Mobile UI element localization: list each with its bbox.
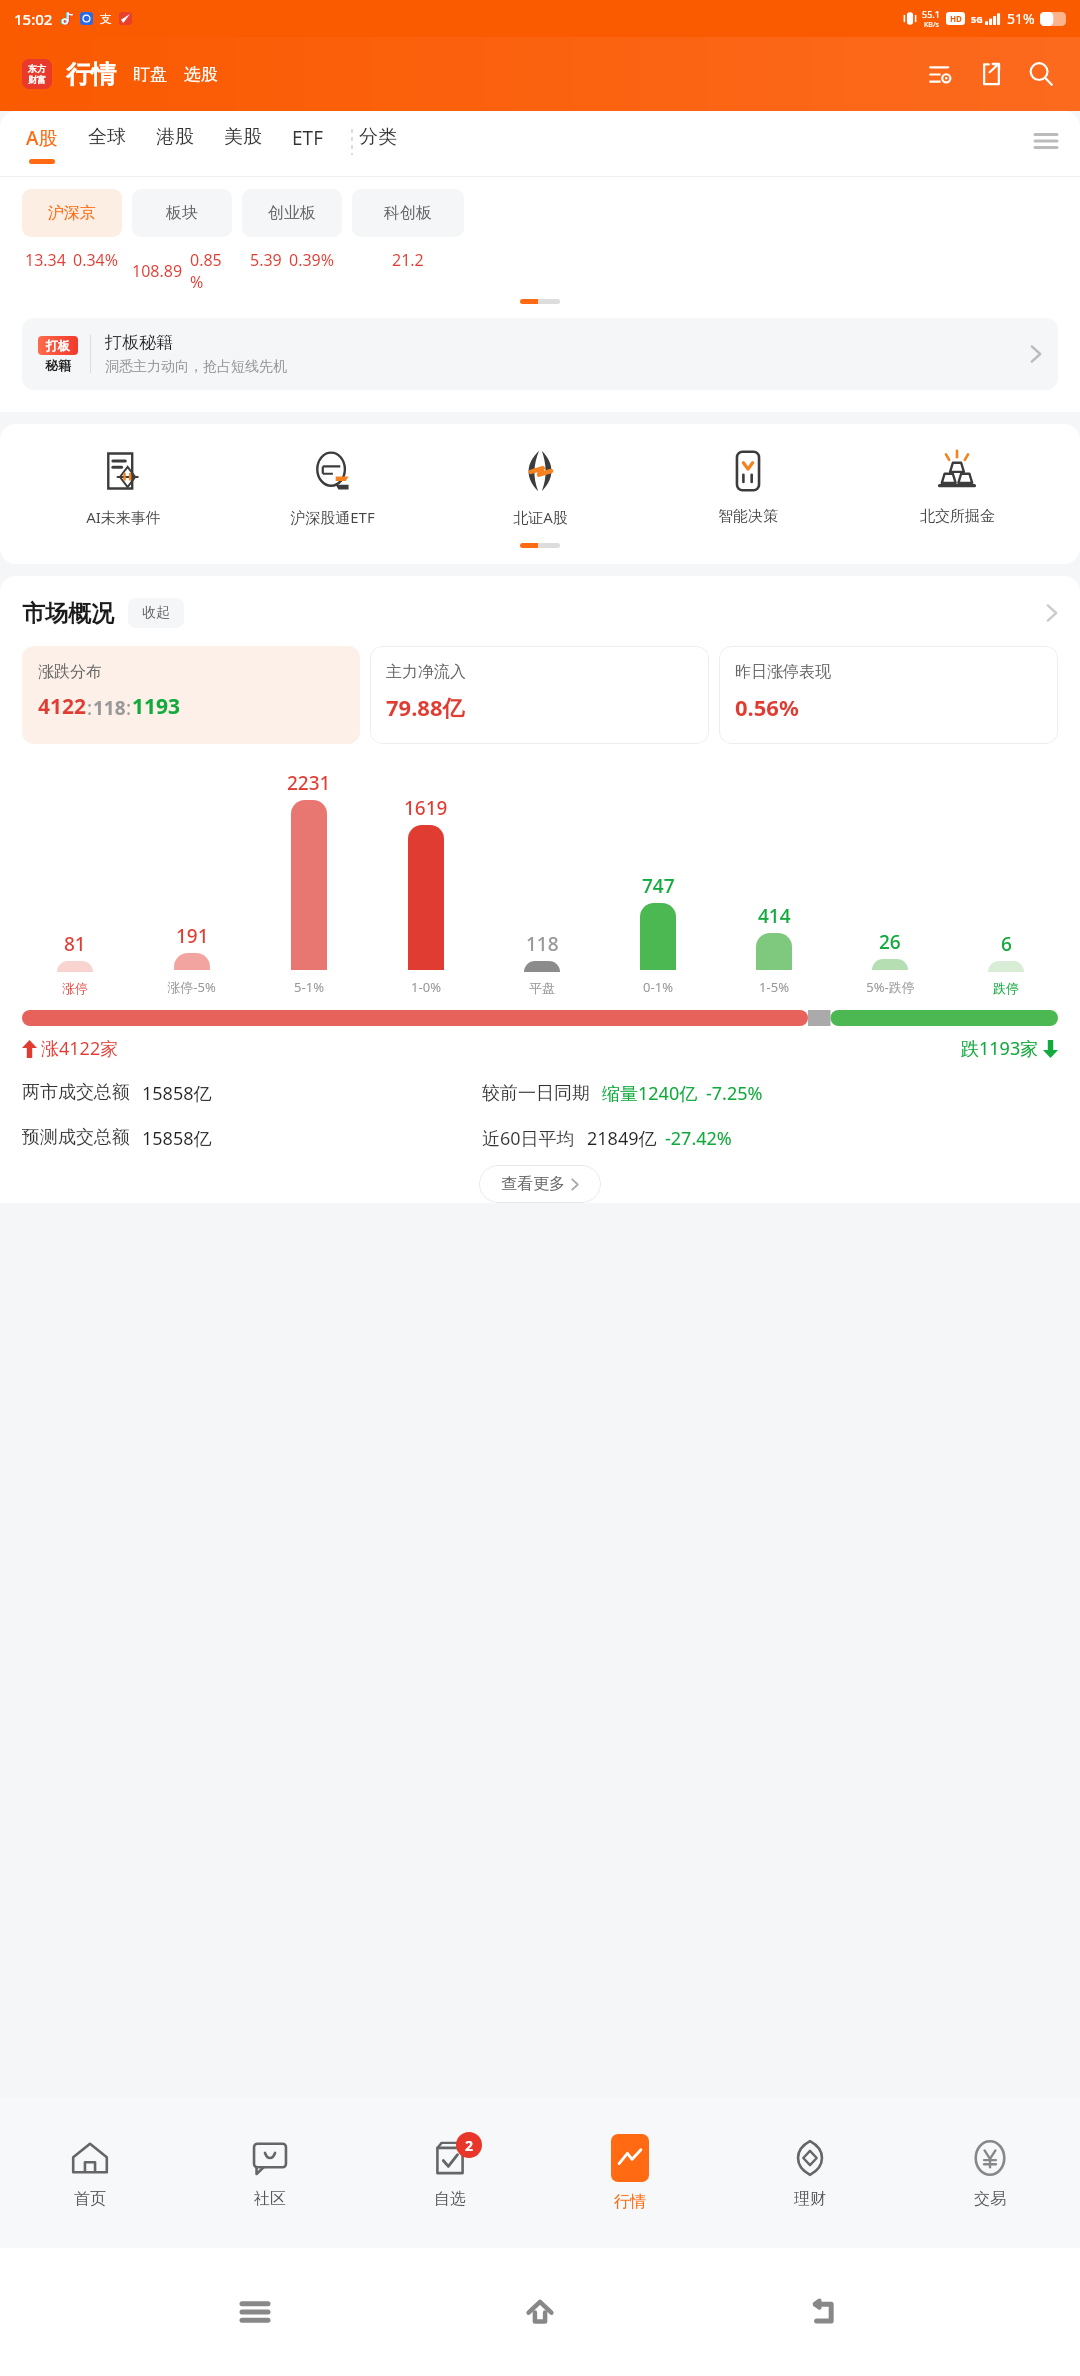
staticText: 预测成交总额 xyxy=(22,1126,130,1149)
staticText: -7.25% xyxy=(706,1081,763,1106)
staticText: 全球 xyxy=(88,125,126,149)
button[interactable]: Share xyxy=(974,57,1008,91)
button[interactable]: 查看更多 xyxy=(479,1165,601,1203)
staticText: A股 xyxy=(26,125,58,151)
button[interactable]: 打板 xyxy=(22,318,1058,390)
staticText: KB/s xyxy=(924,20,939,30)
staticText: 沪深股通ETF xyxy=(290,507,375,527)
button[interactable]: 涨跌分布 xyxy=(22,646,360,744)
staticText: 15:02 xyxy=(14,9,53,29)
staticText: 打板 xyxy=(46,338,70,353)
button[interactable]: 沪深京 xyxy=(22,189,122,237)
button[interactable]: 首页 xyxy=(0,2098,180,2248)
button[interactable]: ETF xyxy=(292,125,323,159)
staticText: : xyxy=(126,695,132,721)
staticText: : xyxy=(87,695,93,721)
staticText: 秘籍 xyxy=(45,357,71,373)
staticText: 0.34% xyxy=(73,249,119,271)
staticText: 15858亿 xyxy=(142,1081,212,1106)
staticText: -27.42% xyxy=(665,1126,732,1151)
staticText: 打板秘籍 xyxy=(105,332,173,353)
button[interactable]: 北交所掘金 xyxy=(862,448,1052,526)
staticText: 5G xyxy=(971,13,983,25)
staticText: 智能决策 xyxy=(718,507,778,526)
staticText: 港股 xyxy=(156,125,194,149)
staticText: 涨4122家 xyxy=(41,1036,119,1061)
staticText: 收起 xyxy=(142,604,170,622)
button[interactable]: 东方 xyxy=(22,59,52,89)
button[interactable]: 美股 xyxy=(224,125,262,157)
staticText: 5.39 xyxy=(250,249,282,271)
staticText: 自选 xyxy=(434,2189,466,2209)
staticText: 理财 xyxy=(794,2189,826,2209)
staticText: 沪深京 xyxy=(48,203,96,223)
staticText: 分类 xyxy=(359,125,397,149)
staticText: 盯盘 xyxy=(133,64,167,85)
button[interactable]: More tabs xyxy=(1030,125,1062,157)
staticText: 社区 xyxy=(254,2189,286,2209)
staticText: 创业板 xyxy=(268,203,316,223)
button[interactable]: Home xyxy=(510,2282,570,2342)
staticText: 0.56% xyxy=(735,692,799,722)
staticText: 跌停 xyxy=(993,980,1019,996)
button[interactable]: A股 xyxy=(26,125,58,164)
button[interactable]: 主力净流入 xyxy=(370,646,709,744)
staticText: 北证A股 xyxy=(513,507,568,527)
staticText: 两市成交总额 xyxy=(22,1081,130,1104)
staticText: 5-1% xyxy=(294,978,324,996)
staticText: 15858亿 xyxy=(142,1126,212,1151)
staticText: 涨停 xyxy=(62,980,88,996)
button[interactable]: 科创板 xyxy=(352,189,464,237)
button[interactable]: AI未来事件 xyxy=(28,448,218,527)
staticText: 昨日涨停表现 xyxy=(735,662,831,682)
staticText: 查看更多 xyxy=(501,1174,565,1194)
button[interactable]: 社区 xyxy=(180,2098,360,2248)
button[interactable]: 板块 xyxy=(132,189,232,237)
staticText: 1-0% xyxy=(411,978,441,996)
button[interactable]: 盯盘 xyxy=(133,64,167,85)
button[interactable]: 行情 xyxy=(66,59,116,90)
button[interactable]: 全球 xyxy=(88,125,126,157)
staticText: 6 xyxy=(1001,931,1012,957)
staticText: 北交所掘金 xyxy=(920,507,995,526)
button[interactable]: Recent apps xyxy=(225,2282,285,2342)
staticText: 板块 xyxy=(166,203,198,223)
staticText: 行情 xyxy=(614,2192,646,2212)
button[interactable]: 港股 xyxy=(156,125,194,157)
button[interactable]: 创业板 xyxy=(242,189,342,237)
staticText: 缩量1240亿 xyxy=(602,1081,698,1106)
button[interactable]: 行情 xyxy=(540,2098,720,2248)
staticText: 21.2 xyxy=(392,249,424,271)
staticText: 4122 xyxy=(38,692,87,721)
staticText: 118 xyxy=(526,931,559,957)
button[interactable]: 2 xyxy=(360,2098,540,2248)
staticText: 涨停-5% xyxy=(167,978,216,996)
button[interactable]: 分类 xyxy=(359,125,397,157)
button[interactable]: 理财 xyxy=(720,2098,900,2248)
staticText: 21849亿 xyxy=(587,1126,657,1151)
staticText: 0.39% xyxy=(289,249,335,271)
staticText: 财富 xyxy=(28,74,46,85)
staticText: 1193 xyxy=(132,692,181,721)
button[interactable]: Filter settings xyxy=(924,57,958,91)
staticText: 东方 xyxy=(28,63,46,74)
staticText: AI未来事件 xyxy=(86,507,161,527)
staticText: 81 xyxy=(64,931,86,957)
staticText: HD xyxy=(950,13,962,24)
button[interactable]: 市场概况 xyxy=(22,598,1058,628)
staticText: 5%-跌停 xyxy=(866,978,915,996)
staticText: 首页 xyxy=(74,2189,106,2209)
staticText: 市场概况 xyxy=(22,599,114,628)
button[interactable]: 交易 xyxy=(900,2098,1080,2248)
button[interactable]: Back xyxy=(795,2282,855,2342)
staticText: 13.34 xyxy=(25,249,66,271)
staticText: 行情 xyxy=(66,59,116,90)
button[interactable]: 沪深股通ETF xyxy=(237,448,427,527)
staticText: 108.89 xyxy=(132,260,183,282)
button[interactable]: 北证A股 xyxy=(445,448,635,527)
button[interactable]: Search xyxy=(1024,57,1058,91)
staticText: 1619 xyxy=(404,795,448,821)
button[interactable]: 选股 xyxy=(184,64,218,85)
button[interactable]: 智能决策 xyxy=(653,448,843,526)
button[interactable]: 昨日涨停表现 xyxy=(719,646,1058,744)
